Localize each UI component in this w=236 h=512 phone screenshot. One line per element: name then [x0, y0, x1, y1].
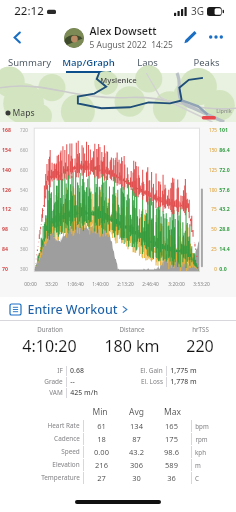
staticText: El. Loss: [141, 377, 163, 386]
staticText: 2:46:40: [142, 281, 159, 288]
button[interactable]: Alex Dowsett: [64, 24, 173, 51]
button[interactable]: More options: [204, 25, 228, 49]
staticText: Peaks: [193, 56, 220, 69]
staticText: bpm: [195, 422, 209, 430]
staticText: 0.0: [219, 265, 227, 272]
staticText: 1,775 m: [170, 366, 197, 376]
staticText: IF: [57, 366, 63, 375]
staticText: 216: [95, 460, 108, 470]
staticText: 360: [20, 246, 28, 252]
staticText: 98: [2, 225, 8, 232]
staticText: 98.6: [164, 447, 179, 457]
staticText: 175: [209, 127, 217, 133]
button[interactable]: Peaks: [177, 52, 236, 73]
staticText: rpm: [195, 435, 208, 443]
staticText: 30: [132, 473, 141, 483]
staticText: 425 m/h: [70, 388, 98, 398]
staticText: 14:25: [151, 39, 173, 51]
button[interactable]: Laps: [118, 52, 177, 73]
staticText: 33:20: [45, 281, 58, 288]
button[interactable]: Summary: [0, 52, 59, 73]
staticText: 4:10:20: [22, 335, 77, 357]
staticText: 61: [97, 421, 106, 431]
staticText: kph: [195, 448, 206, 456]
staticText: --: [70, 377, 75, 387]
staticText: 126: [2, 186, 11, 193]
staticText: 1:40:00: [92, 281, 109, 288]
staticText: Entire Workout: [27, 301, 118, 318]
staticText: Maps: [12, 107, 35, 119]
staticText: 18: [97, 434, 106, 444]
staticText: 180 km: [104, 335, 160, 357]
staticText: Laps: [137, 56, 158, 69]
staticText: Avg: [129, 406, 144, 418]
button[interactable]: Edit: [178, 25, 202, 49]
staticText: 36: [167, 473, 176, 483]
staticText: 100: [209, 187, 217, 193]
staticText: 220: [186, 335, 214, 357]
staticText: 165: [165, 421, 178, 431]
staticText: 125: [209, 167, 217, 173]
staticText: Temperature: [41, 473, 80, 482]
staticText: 28.8: [219, 225, 230, 232]
staticText: VAM: [49, 388, 63, 397]
staticText: 420: [20, 226, 28, 232]
staticText: 154: [2, 146, 11, 153]
staticText: 480: [20, 206, 28, 212]
staticText: 660: [20, 147, 28, 153]
staticText: 720: [20, 127, 28, 133]
staticText: 84: [2, 245, 8, 252]
staticText: hrTSS: [192, 325, 209, 333]
button[interactable]: Entire Workout: [0, 297, 236, 321]
staticText: 43.2: [129, 447, 144, 457]
button[interactable]: Map/Graph: [59, 52, 118, 73]
staticText: Summary: [8, 56, 51, 69]
staticText: Elevation: [52, 460, 80, 469]
staticText: 134: [130, 421, 143, 431]
staticText: 50: [211, 226, 217, 232]
staticText: 3:53:20: [193, 281, 210, 288]
staticText: 0: [214, 266, 217, 272]
staticText: 168: [2, 126, 11, 133]
staticText: 600: [20, 167, 28, 173]
staticText: 1:06:40: [67, 281, 84, 288]
staticText: 589: [165, 460, 178, 470]
staticText: C: [195, 474, 199, 482]
staticText: 43.2: [219, 205, 230, 212]
staticText: Cadence: [54, 434, 80, 443]
staticText: 2:13:20: [117, 281, 134, 288]
staticText: Myslenice: [100, 75, 137, 85]
staticText: 3G: [191, 4, 204, 18]
staticText: 140: [2, 166, 11, 173]
staticText: 101: [219, 126, 228, 133]
button[interactable]: Back: [4, 24, 30, 50]
staticText: 3:20:00: [168, 281, 185, 288]
staticText: Duration: [37, 325, 63, 333]
staticText: Min: [92, 406, 108, 418]
staticText: 300: [20, 266, 28, 272]
staticText: 1,778 m: [170, 377, 197, 387]
staticText: 150: [209, 147, 217, 153]
staticText: Distance: [119, 325, 145, 333]
staticText: El. Gain: [140, 366, 163, 375]
staticText: Heart Rate: [47, 421, 80, 430]
staticText: 75: [211, 206, 217, 212]
staticText: 70: [2, 265, 8, 272]
staticText: Max: [164, 406, 181, 418]
staticText: 14.4: [219, 245, 230, 252]
staticText: 0.68: [70, 366, 84, 376]
staticText: Grade: [44, 377, 63, 386]
staticText: 175: [165, 434, 178, 444]
staticText: Lipnik: [216, 107, 232, 114]
staticText: Speed: [61, 447, 80, 456]
staticText: m: [195, 461, 201, 469]
staticText: 112: [2, 205, 11, 212]
staticText: 87: [132, 434, 141, 444]
staticText: 00:00: [24, 281, 37, 288]
staticText: 25: [211, 246, 217, 252]
staticText: 27: [97, 473, 106, 483]
staticText: 86.4: [219, 146, 230, 153]
staticText: Alex Dowsett: [89, 24, 157, 38]
staticText: 72.0: [219, 166, 230, 173]
staticText: 540: [20, 187, 28, 193]
